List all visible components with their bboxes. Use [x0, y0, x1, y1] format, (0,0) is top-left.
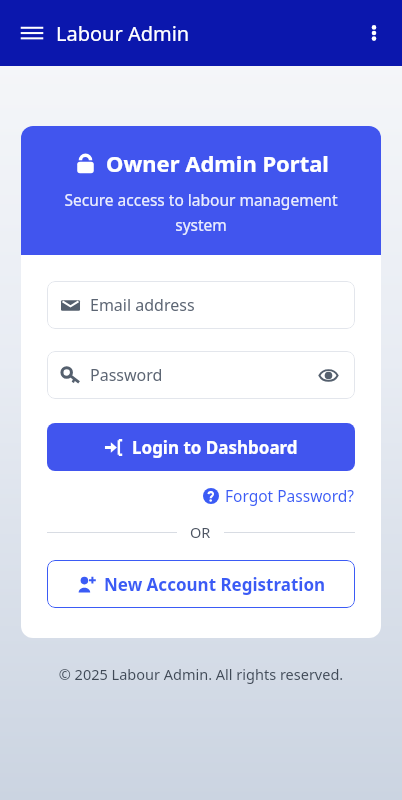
staticText: Secure access to labour management syste… [41, 189, 361, 235]
button[interactable]: Open navigation menu [10, 11, 54, 55]
button[interactable]: New Account Registration [47, 560, 355, 608]
button[interactable]: Show password [315, 362, 341, 388]
button[interactable]: Password [47, 351, 355, 399]
staticText: Forgot Password? [225, 485, 355, 506]
staticText: New Account Registration [104, 573, 326, 596]
button[interactable]: Forgot Password? [203, 485, 355, 506]
staticText: Email address [90, 294, 341, 316]
staticText: OR [190, 522, 211, 542]
staticText: Labour Admin [56, 20, 190, 47]
button[interactable]: Login to Dashboard [47, 423, 355, 471]
staticText: Login to Dashboard [132, 436, 298, 459]
staticText: Password [90, 364, 315, 386]
button[interactable]: More options [352, 11, 396, 55]
staticText: © 2025 Labour Admin. All rights reserved… [0, 664, 402, 684]
staticText: Owner Admin Portal [106, 148, 329, 178]
button[interactable]: Email address [47, 281, 355, 329]
